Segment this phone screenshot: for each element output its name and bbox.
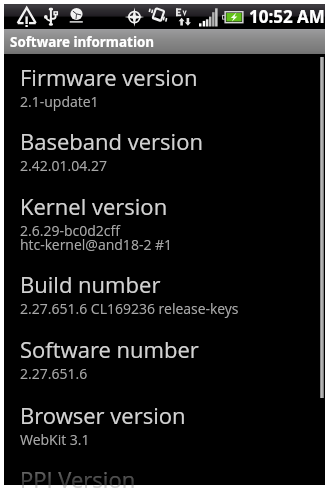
button[interactable]: Browser version xyxy=(4,400,325,472)
button[interactable]: Software information xyxy=(4,29,325,54)
button[interactable]: Baseband version xyxy=(4,126,325,199)
staticText: 2.1-update1 xyxy=(20,92,99,111)
staticText: Kernel version xyxy=(20,191,168,221)
staticText: 2.42.01.04.27 xyxy=(20,156,107,175)
staticText: 2.6.29-bc0d2cff xyxy=(20,221,120,240)
staticText: Baseband version xyxy=(20,126,203,156)
staticText: Build number xyxy=(20,269,161,299)
staticText: Software information xyxy=(10,33,155,51)
staticText: 10:52 AM xyxy=(249,5,325,28)
button[interactable]: Firmware version xyxy=(4,62,325,134)
button[interactable]: Software number xyxy=(4,334,325,408)
button[interactable]: PPI Version xyxy=(4,464,325,488)
staticText: Browser version xyxy=(20,400,186,430)
staticText: 2.27.651.6 xyxy=(20,364,88,383)
button[interactable]: Build number xyxy=(4,269,325,342)
staticText: 2.27.651.6 CL169236 release-keys xyxy=(20,299,239,318)
staticText: Software number xyxy=(20,334,199,364)
staticText: WebKit 3.1 xyxy=(20,430,90,449)
staticText: htc-kernel@and18-2 #1 xyxy=(20,235,173,254)
staticText: Firmware version xyxy=(20,62,198,92)
button[interactable]: Kernel version xyxy=(4,191,325,277)
staticText: PPI Version xyxy=(20,464,136,488)
